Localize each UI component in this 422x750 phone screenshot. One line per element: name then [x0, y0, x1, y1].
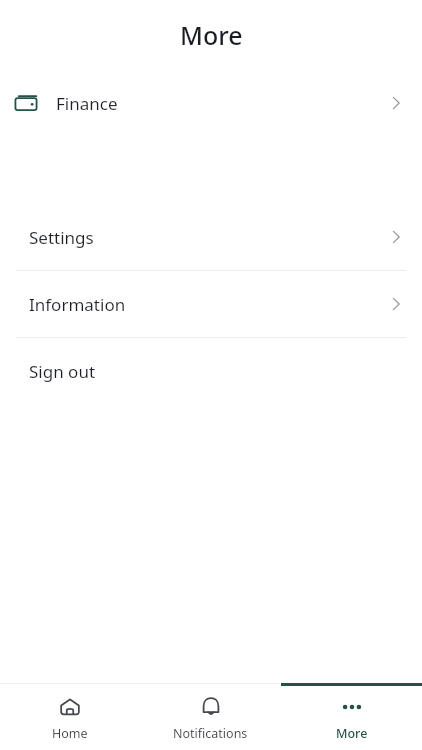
button[interactable]: Settings: [0, 204, 422, 270]
staticText: Notifications: [173, 725, 248, 742]
button[interactable]: Sign out: [0, 338, 422, 404]
staticText: Finance: [56, 92, 118, 115]
button[interactable]: Home: [0, 694, 140, 742]
staticText: More: [180, 18, 243, 52]
staticText: Home: [52, 725, 88, 742]
staticText: Sign out: [29, 360, 96, 383]
button[interactable]: Finance: [0, 70, 422, 136]
button[interactable]: Notifications: [140, 694, 281, 742]
button[interactable]: More: [281, 694, 422, 742]
staticText: Settings: [29, 226, 94, 249]
staticText: Information: [29, 293, 126, 316]
button[interactable]: Information: [0, 271, 422, 337]
staticText: More: [336, 725, 368, 742]
